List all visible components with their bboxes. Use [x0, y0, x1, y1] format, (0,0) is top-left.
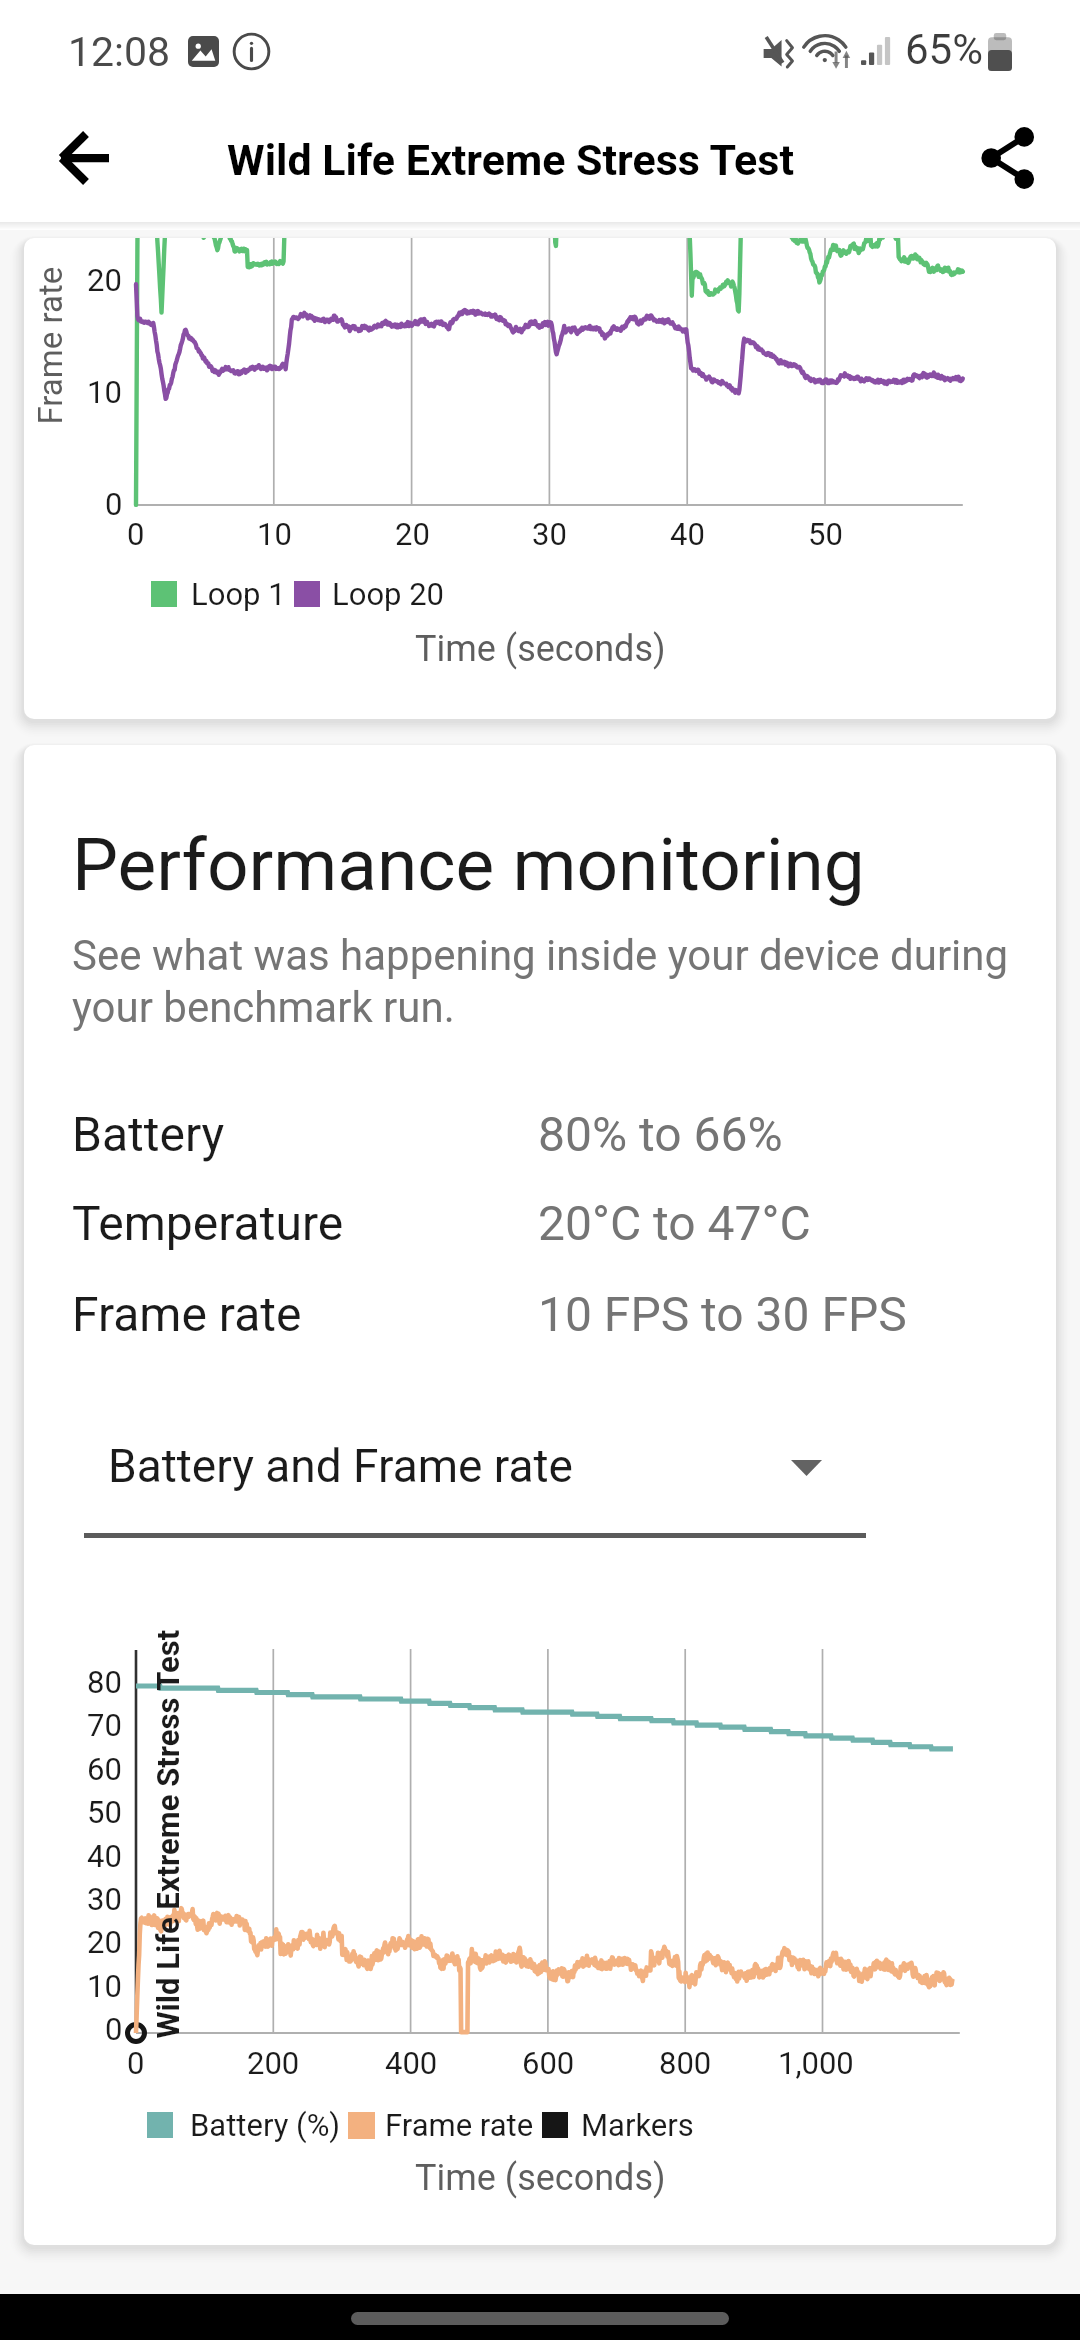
staticText: 30	[87, 1881, 122, 1917]
staticText: Battery and Frame rate	[108, 1439, 573, 1493]
staticText: 0	[127, 516, 145, 552]
staticText: 12:08	[68, 28, 171, 76]
staticText: 80% to 66%	[538, 1106, 783, 1162]
staticText: 60	[87, 1751, 122, 1787]
button[interactable]: Back	[34, 108, 134, 208]
staticText: Time (seconds)	[415, 2157, 666, 2199]
staticText: 20	[87, 1924, 122, 1960]
staticText: 20	[87, 262, 122, 298]
staticText: Time (seconds)	[415, 628, 666, 670]
staticText: 10	[87, 374, 122, 410]
staticText: 50	[87, 1794, 122, 1830]
staticText: 800	[659, 2045, 712, 2081]
staticText: Battery	[72, 1106, 225, 1162]
staticText: 0	[105, 2011, 123, 2047]
staticText: Battery (%)	[190, 2107, 341, 2143]
staticText: 200	[247, 2045, 300, 2081]
staticText: Markers	[581, 2107, 694, 2143]
staticText: 50	[808, 516, 843, 552]
staticText: 30	[532, 516, 567, 552]
staticText: Wild Life Extreme Stress Test	[149, 1629, 185, 2038]
staticText: Loop 1	[191, 576, 286, 612]
staticText: Frame rate	[30, 266, 69, 424]
staticText: Wild Life Extreme Stress Test	[227, 135, 794, 185]
staticText: Frame rate	[385, 2107, 534, 2143]
staticText: Temperature	[72, 1195, 344, 1251]
staticText: 10	[257, 516, 292, 552]
staticText: 20	[395, 516, 430, 552]
staticText: Loop 20	[332, 576, 444, 612]
staticText: 20°C to 47°C	[538, 1195, 811, 1251]
staticText: 1,000	[778, 2045, 854, 2081]
staticText: 65%	[905, 25, 983, 74]
staticText: 10 FPS to 30 FPS	[538, 1286, 907, 1342]
button[interactable]: Share	[958, 108, 1058, 208]
staticText: 0	[105, 486, 123, 522]
staticText: 10	[87, 1968, 122, 2004]
staticText: 600	[522, 2045, 575, 2081]
staticText: 70	[87, 1707, 122, 1743]
staticText: Frame rate	[72, 1286, 302, 1342]
staticText: 40	[87, 1838, 122, 1874]
staticText: Performance monitoring	[72, 822, 865, 908]
staticText: 40	[670, 516, 705, 552]
button[interactable]: Battery and Frame rate	[84, 1415, 866, 1541]
staticText: See what was happening inside your devic…	[72, 931, 1017, 1032]
staticText: 400	[385, 2045, 438, 2081]
staticText: 80	[87, 1664, 122, 1700]
staticText: 0	[127, 2045, 145, 2081]
